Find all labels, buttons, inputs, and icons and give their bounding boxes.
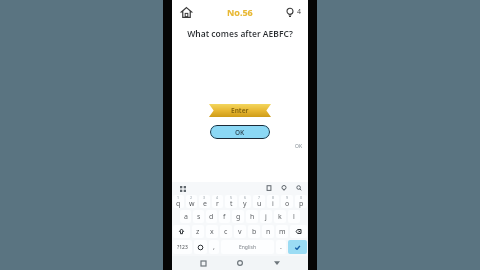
button[interactable]: Keyboard options [178,184,187,193]
staticText: s [197,212,201,222]
staticText: o [285,199,290,208]
button[interactable]: Recents [197,257,209,269]
button[interactable]: z [192,225,204,238]
button[interactable]: 4 [212,195,223,208]
staticText: Enter [231,106,249,115]
staticText: a [184,212,188,222]
staticText: 9 [286,195,289,200]
staticText: w [189,199,195,208]
button[interactable]: Enter [209,104,271,117]
button[interactable]: c [220,225,232,238]
button[interactable]: n [262,225,274,238]
button[interactable]: Home [234,257,246,269]
button[interactable]: 8 [267,195,279,208]
button[interactable]: 3 [199,195,210,208]
button[interactable]: v [234,225,246,238]
staticText: b [252,227,257,237]
staticText: h [250,212,255,222]
button[interactable]: 5 [225,195,237,208]
button[interactable]: s [193,210,204,223]
button[interactable]: 2 [186,195,197,208]
staticText: t [230,199,233,208]
staticText: OK [295,143,303,150]
button[interactable]: f [219,210,230,223]
staticText: p [299,199,304,208]
button[interactable]: 0 [295,195,307,208]
staticText: u [257,199,262,208]
staticText: f [223,212,226,222]
staticText: What comes after AEBFC? [187,28,293,40]
staticText: 6 [244,195,247,200]
staticText: g [236,212,241,222]
button[interactable]: k [274,210,286,223]
button[interactable]: 1 [173,195,184,208]
button[interactable]: Shift [173,225,190,238]
button[interactable]: , [209,240,219,254]
button[interactable]: d [206,210,217,223]
button[interactable]: a [180,210,191,223]
staticText: i [272,199,274,208]
staticText: k [278,212,282,222]
button[interactable]: ?123 [173,240,192,254]
staticText: c [224,227,228,237]
staticText: 2 [190,195,193,200]
staticText: n [266,227,271,237]
button[interactable]: Hints [285,7,302,17]
staticText: 4 [297,7,302,17]
button[interactable]: 7 [253,195,265,208]
button[interactable]: OK [210,125,270,139]
staticText: y [243,199,247,208]
button[interactable]: 9 [281,195,293,208]
button[interactable]: Clipboard [265,184,273,192]
staticText: 5 [230,195,233,200]
staticText: z [196,227,200,237]
staticText: . [280,242,282,252]
button[interactable]: x [206,225,218,238]
button[interactable]: Stickers [280,184,288,192]
button[interactable]: j [260,210,272,223]
button[interactable]: 6 [239,195,251,208]
button[interactable]: English [221,240,274,254]
button[interactable]: b [248,225,260,238]
staticText: 4 [216,195,219,200]
button[interactable]: g [232,210,244,223]
staticText: x [210,227,214,237]
button[interactable]: Back [271,257,283,269]
button[interactable]: l [288,210,300,223]
staticText: , [213,242,215,252]
staticText: No.56 [227,6,253,18]
staticText: r [216,199,219,208]
staticText: e [203,199,207,208]
staticText: 3 [203,195,206,200]
staticText: q [176,199,181,208]
staticText: d [209,212,214,222]
button[interactable]: Emoji [194,240,207,254]
button[interactable]: Enter [288,240,307,254]
button[interactable]: Search [295,184,303,192]
staticText: English [239,244,257,251]
staticText: l [293,212,295,222]
button[interactable]: Home [178,4,194,20]
staticText: 0 [300,195,303,200]
staticText: v [238,227,242,237]
staticText: j [265,212,267,222]
staticText: m [279,227,286,237]
button[interactable]: . [276,240,286,254]
staticText: 7 [258,195,261,200]
staticText: OK [235,128,245,137]
button[interactable]: Backspace [290,225,307,238]
button[interactable]: m [276,225,288,238]
staticText: ?123 [177,244,188,251]
staticText: 8 [272,195,275,200]
button[interactable]: h [246,210,258,223]
staticText: 1 [177,195,180,200]
